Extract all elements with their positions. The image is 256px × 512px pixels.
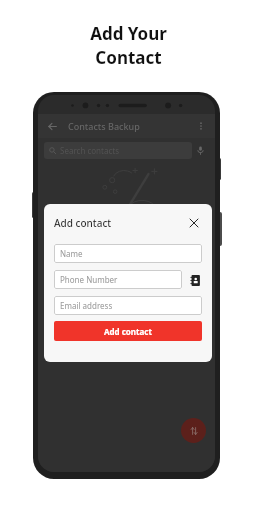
staticText: Name — [60, 248, 83, 259]
button[interactable]: Add contact — [54, 321, 202, 341]
staticText: Contact — [95, 46, 162, 69]
button[interactable]: Back — [44, 118, 60, 134]
button[interactable]: Search contacts — [44, 142, 192, 159]
button[interactable]: Name — [54, 244, 202, 263]
button[interactable]: Voice search — [192, 142, 209, 159]
staticText: Add Your — [90, 22, 167, 45]
button[interactable]: More options — [193, 118, 209, 134]
staticText: Email address — [60, 300, 113, 311]
button[interactable]: Pick from contacts — [188, 273, 202, 287]
staticText: Add contact — [104, 326, 152, 337]
button[interactable]: Phone Number — [54, 270, 182, 289]
staticText: Add contact — [54, 216, 112, 230]
button[interactable]: Sync contacts — [181, 418, 206, 443]
button[interactable]: Email address — [54, 296, 202, 315]
button[interactable]: Close — [186, 215, 202, 231]
staticText: Contacts Backup — [68, 120, 140, 132]
staticText: Search contacts — [60, 145, 119, 156]
staticText: Phone Number — [60, 274, 118, 285]
